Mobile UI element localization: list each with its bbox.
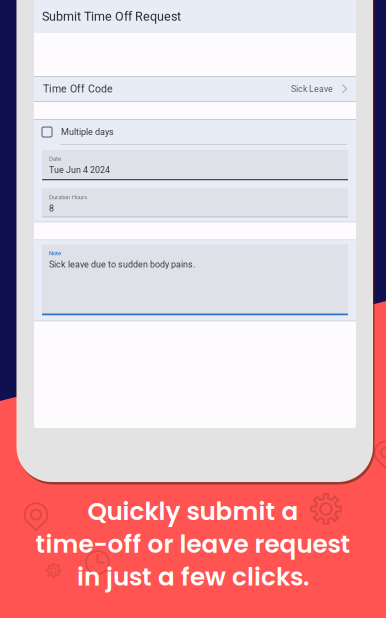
staticText: Multiple days [61,127,114,137]
staticText: Date [49,155,61,162]
staticText: Time Off Code [43,83,113,95]
staticText: Tue Jun 4 2024 [49,165,110,175]
button[interactable]: Time Off Code [34,77,356,101]
staticText: Sick leave due to sudden body pains. [49,259,195,270]
button[interactable]: Multiple days [34,120,356,144]
staticText: Sick Leave [291,84,333,94]
staticText: Duration Hours [49,193,87,201]
staticText: Note [49,249,61,257]
staticText: in just a few clicks. [77,559,309,594]
staticText: Submit Time Off Request [42,9,181,24]
staticText: 8 [49,203,54,214]
staticText: Quickly submit a [87,494,298,529]
staticText: time-off or leave request [35,527,350,561]
